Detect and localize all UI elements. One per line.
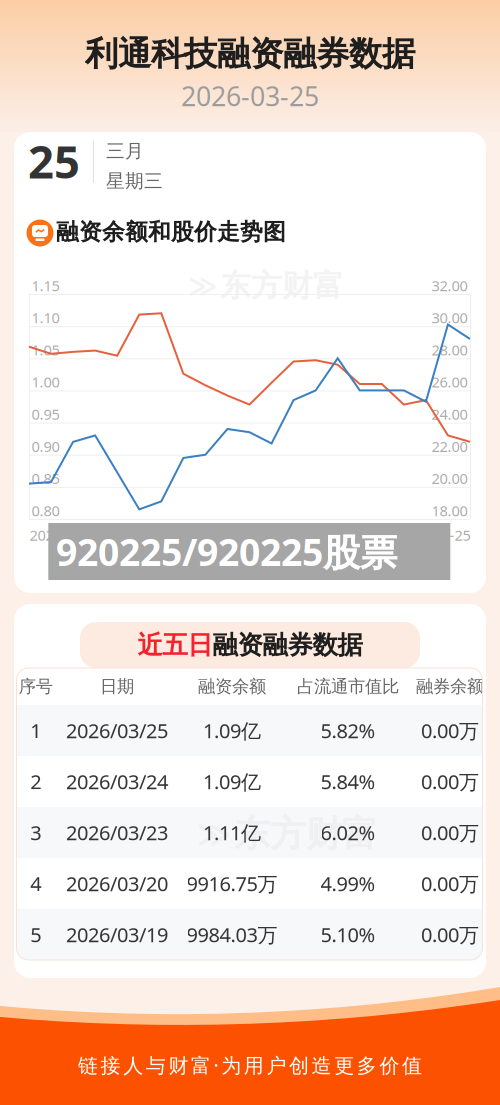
staticText: 2 — [30, 768, 41, 795]
staticText: 18.00 — [431, 501, 467, 520]
staticText: 5.82% — [320, 717, 375, 744]
staticText: 0.00万 — [421, 768, 479, 795]
staticText: 融资融券数据 — [212, 629, 362, 660]
staticText: 28.00 — [431, 340, 467, 359]
staticText: 0.00万 — [421, 870, 479, 897]
staticText: 2026/03/23 — [66, 819, 168, 846]
staticText: 融资余额和股价走势图 — [56, 218, 286, 246]
staticText: 1.05 — [31, 340, 59, 359]
staticText: 近五日 — [137, 629, 212, 660]
staticText: 22.00 — [431, 436, 467, 456]
staticText: 5.10% — [320, 921, 375, 948]
staticText: 2026-03-25 — [181, 78, 319, 114]
staticText: 920225/920225股票 — [56, 527, 397, 576]
staticText: 1.09亿 — [203, 717, 261, 744]
staticText: 0.00万 — [421, 921, 479, 948]
staticText: 0.90 — [31, 436, 59, 456]
staticText: 9984.03万 — [186, 921, 277, 948]
staticText: 2026/03/19 — [66, 921, 168, 948]
staticText: 1.09亿 — [203, 768, 261, 795]
staticText: 32.00 — [431, 276, 467, 295]
staticText: 2026/03/25 — [66, 717, 168, 744]
staticText: 3 — [30, 819, 41, 846]
staticText: 1 — [30, 717, 41, 744]
staticText: 东方财富 — [234, 812, 378, 856]
staticText: ≫ — [197, 816, 231, 852]
staticText: 30.00 — [431, 308, 467, 327]
staticText: 0.00万 — [421, 717, 479, 744]
staticText: 0.85 — [31, 469, 59, 488]
staticText: 24.00 — [431, 404, 467, 424]
staticText: 1.00 — [31, 372, 59, 392]
staticText: 利通科技融资融券数据 — [85, 33, 415, 74]
staticText: 1.15 — [31, 276, 59, 295]
staticText: 2026/03/24 — [66, 768, 168, 795]
staticText: 0.80 — [31, 501, 59, 520]
staticText: ≫ — [188, 270, 217, 302]
staticText: 25 — [28, 131, 80, 191]
staticText: 20.00 — [431, 469, 467, 488]
staticText: 2026-02-24 — [29, 525, 103, 545]
staticText: 0.00万 — [421, 819, 479, 846]
staticText: 序号 — [19, 676, 53, 697]
staticText: 26.00 — [431, 372, 467, 392]
staticText: 星期三 — [106, 169, 163, 192]
staticText: 1.10 — [31, 308, 59, 327]
staticText: 1.11亿 — [203, 819, 261, 846]
staticText: 5.84% — [320, 768, 375, 795]
staticText: 融券余额 — [416, 676, 484, 697]
staticText: 收盘价(元) — [289, 550, 357, 570]
staticText: 5 — [30, 921, 41, 948]
staticText: 2026-03-25 — [396, 525, 470, 545]
staticText: 6.02% — [320, 819, 375, 846]
staticText: 9916.75万 — [186, 870, 277, 897]
staticText: 融资余额 — [198, 676, 266, 697]
staticText: 日期 — [100, 676, 134, 697]
staticText: 2026/03/20 — [66, 870, 168, 897]
staticText: 融资余额(亿元) — [159, 550, 257, 570]
staticText: 东方财富 — [220, 267, 344, 305]
staticText: 4 — [30, 870, 41, 897]
staticText: 三月 — [106, 140, 144, 162]
staticText: 4.99% — [320, 870, 375, 897]
staticText: 链接人与财富·为用户创造更多价值 — [78, 1052, 422, 1078]
staticText: 0.95 — [31, 404, 59, 424]
staticText: 占流通市值比 — [297, 676, 399, 697]
